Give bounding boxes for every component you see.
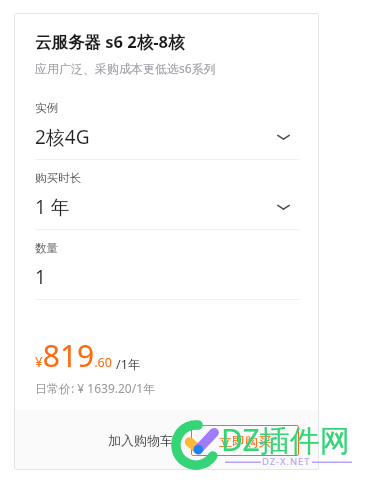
staticText: ¥819.60 (35, 335, 112, 376)
staticText: DZ插件网 (221, 419, 350, 460)
staticText: 应用广泛、采购成本更低选s6系列 (35, 60, 216, 76)
staticText: 日常价: ¥ 1639.20/1年 (35, 380, 156, 396)
staticText: 1 年 (35, 194, 70, 220)
staticText: 2核4G (35, 124, 90, 150)
staticText: 立即购买 (219, 433, 271, 449)
other: Expand (277, 131, 290, 144)
staticText: DZ-X.NET (262, 455, 311, 468)
staticText: 数量 (35, 241, 58, 255)
button[interactable]: 立即购买 (191, 425, 299, 456)
other: Expand (277, 201, 290, 214)
staticText: 云服务器 s6 2核-8核 (35, 30, 185, 53)
staticText: 1 (35, 264, 46, 290)
staticText: 购买时长 (35, 171, 81, 185)
staticText: /1年 (116, 356, 141, 373)
staticText: 加入购物车 (108, 432, 173, 448)
button[interactable]: 加入购物车 (98, 424, 183, 456)
staticText: 实例 (35, 101, 58, 115)
